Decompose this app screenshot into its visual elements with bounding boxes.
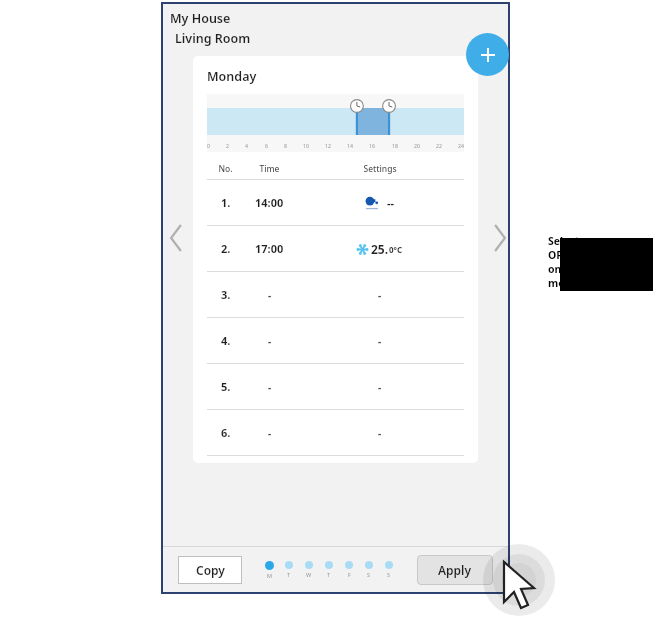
button[interactable]: W bbox=[299, 561, 319, 578]
button[interactable]: 6. bbox=[193, 410, 478, 456]
staticText: Living Room bbox=[175, 30, 251, 47]
staticText: T bbox=[327, 571, 331, 578]
staticText: mode bbox=[548, 276, 578, 290]
staticText: Settings bbox=[363, 163, 397, 175]
button[interactable]: Apply bbox=[417, 555, 493, 585]
button[interactable]: 4. bbox=[193, 318, 478, 364]
staticText: 16 bbox=[369, 142, 375, 149]
staticText: Select bbox=[548, 234, 580, 248]
button[interactable]: 5. bbox=[193, 364, 478, 410]
button[interactable]: T bbox=[319, 561, 339, 578]
staticText: 14 bbox=[347, 142, 353, 149]
staticText: 22 bbox=[436, 142, 442, 149]
button[interactable]: 3. bbox=[193, 272, 478, 318]
staticText: 14:00 bbox=[255, 195, 284, 210]
staticText: F bbox=[348, 571, 351, 578]
staticText: - bbox=[378, 288, 382, 302]
button[interactable]: S bbox=[359, 561, 379, 578]
staticText: 25. bbox=[371, 241, 389, 257]
staticText: OFF or ON and this bbox=[548, 248, 647, 262]
staticText: - bbox=[268, 426, 272, 440]
staticText: on the temperature bbox=[548, 262, 652, 276]
button[interactable]: Add schedule bbox=[466, 33, 509, 76]
staticText: T bbox=[287, 571, 291, 578]
staticText: - bbox=[268, 380, 272, 394]
staticText: Copy bbox=[196, 562, 225, 578]
staticText: - bbox=[268, 288, 272, 302]
staticText: Time bbox=[259, 163, 280, 175]
staticText: 10 bbox=[303, 142, 309, 149]
staticText: - bbox=[378, 334, 382, 348]
staticText: 4 bbox=[245, 142, 248, 149]
button[interactable]: 2. bbox=[193, 226, 478, 272]
staticText: 12 bbox=[325, 142, 331, 149]
staticText: - bbox=[268, 334, 272, 348]
staticText: 1. bbox=[221, 195, 231, 210]
button[interactable]: F bbox=[339, 561, 359, 578]
staticText: 4. bbox=[221, 333, 231, 348]
button[interactable]: T bbox=[279, 561, 299, 578]
staticText: My House bbox=[170, 10, 231, 27]
staticText: 8 bbox=[284, 142, 287, 149]
staticText: No. bbox=[218, 163, 233, 175]
staticText: 3. bbox=[221, 287, 231, 302]
button[interactable]: S bbox=[379, 561, 399, 578]
staticText: Monday bbox=[207, 68, 257, 85]
staticText: 5. bbox=[221, 379, 231, 394]
staticText: 20 bbox=[414, 142, 420, 149]
button[interactable]: Copy bbox=[178, 556, 242, 584]
staticText: S bbox=[387, 571, 391, 578]
staticText: 17:00 bbox=[255, 241, 284, 256]
staticText: W bbox=[306, 571, 312, 578]
staticText: S bbox=[367, 571, 371, 578]
staticText: 0 bbox=[207, 142, 210, 149]
button[interactable]: 1. bbox=[193, 180, 478, 226]
button[interactable]: Previous day bbox=[163, 218, 189, 258]
staticText: 0°C bbox=[389, 244, 403, 255]
staticText: M bbox=[267, 572, 272, 579]
staticText: Apply bbox=[438, 562, 472, 578]
staticText: 2 bbox=[226, 142, 229, 149]
staticText: - bbox=[378, 426, 382, 440]
staticText: - bbox=[378, 380, 382, 394]
staticText: 24 bbox=[458, 142, 464, 149]
staticText: 18 bbox=[392, 142, 398, 149]
staticText: 2. bbox=[221, 241, 231, 256]
staticText: 6 bbox=[265, 142, 268, 149]
staticText: 6. bbox=[221, 425, 231, 440]
button[interactable]: Next day bbox=[487, 218, 513, 258]
staticText: -- bbox=[387, 195, 395, 210]
button[interactable]: M bbox=[259, 561, 279, 579]
